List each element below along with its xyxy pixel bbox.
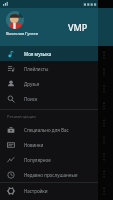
button[interactable]: Недавно прослушанные	[0, 167, 98, 182]
staticText: Вячеслав Гуслев	[6, 31, 38, 36]
staticText: Друзья	[24, 81, 40, 87]
staticText: Недавно прослушанные	[24, 172, 78, 178]
staticText: Новинки	[24, 142, 44, 148]
staticText: Популярное	[24, 157, 51, 163]
button[interactable]: Специально для Вас	[0, 122, 98, 137]
button[interactable]: Моя музыка	[0, 46, 98, 61]
staticText: Моя музыка	[24, 51, 52, 57]
staticText: VMP	[68, 21, 88, 33]
button[interactable]: Друзья	[0, 76, 98, 91]
button[interactable]: Популярное	[0, 152, 98, 167]
button[interactable]: Поиск	[0, 91, 98, 106]
staticText: Поиск	[24, 96, 38, 102]
button[interactable]: Плейлисты	[0, 61, 98, 76]
staticText: Настройки	[24, 188, 48, 194]
button[interactable]: Настройки	[0, 183, 98, 198]
staticText: Специально для Вас	[24, 127, 69, 133]
button[interactable]: Новинки	[0, 137, 98, 152]
staticText: Плейлисты	[24, 66, 49, 72]
staticText: Рекомендации	[7, 114, 36, 119]
